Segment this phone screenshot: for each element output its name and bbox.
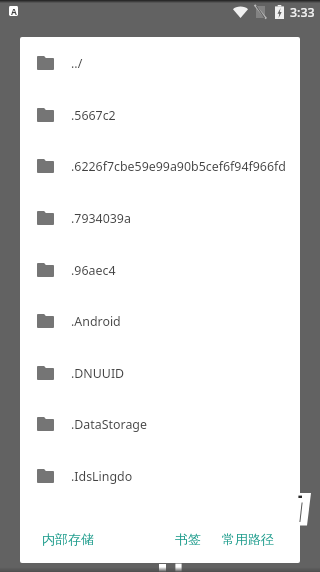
staticText: 3:33 xyxy=(290,4,315,21)
button[interactable]: .96aec4 xyxy=(20,244,300,296)
button[interactable]: ../ xyxy=(20,37,300,89)
staticText: A xyxy=(11,6,17,16)
button[interactable]: 书签 xyxy=(175,527,201,551)
staticText: 常用路径 xyxy=(222,531,274,547)
button[interactable]: .5667c2 xyxy=(20,89,300,141)
staticText: .IdsLingdo xyxy=(71,468,133,485)
other: Wi-Fi xyxy=(233,5,248,18)
other: Battery charging xyxy=(275,5,284,19)
button[interactable]: .DNUUID xyxy=(20,347,300,399)
other: No signal xyxy=(256,6,265,18)
staticText: .96aec4 xyxy=(71,262,116,279)
button[interactable]: .IdsLingdo xyxy=(20,450,300,502)
button[interactable]: .6226f7cbe59e99a90b5cef6f94f966fd xyxy=(20,140,300,192)
button[interactable]: 内部存储 xyxy=(42,527,94,551)
staticText: .7934039a xyxy=(71,210,131,227)
button[interactable]: .7934039a xyxy=(20,192,300,244)
button[interactable]: .Android xyxy=(20,295,300,347)
staticText: 内部存储 xyxy=(42,531,94,547)
button[interactable]: 常用路径 xyxy=(222,527,274,551)
staticText: ../ xyxy=(71,55,83,72)
staticText: .DNUUID xyxy=(71,365,125,382)
staticText: .Android xyxy=(71,313,121,330)
other: Input method xyxy=(9,6,18,16)
staticText: .5667c2 xyxy=(71,107,116,124)
staticText: .6226f7cbe59e99a90b5cef6f94f966fd xyxy=(71,158,286,175)
staticText: 书签 xyxy=(175,531,201,547)
button[interactable]: .DataStorage xyxy=(20,398,300,450)
staticText: .DataStorage xyxy=(71,416,147,433)
